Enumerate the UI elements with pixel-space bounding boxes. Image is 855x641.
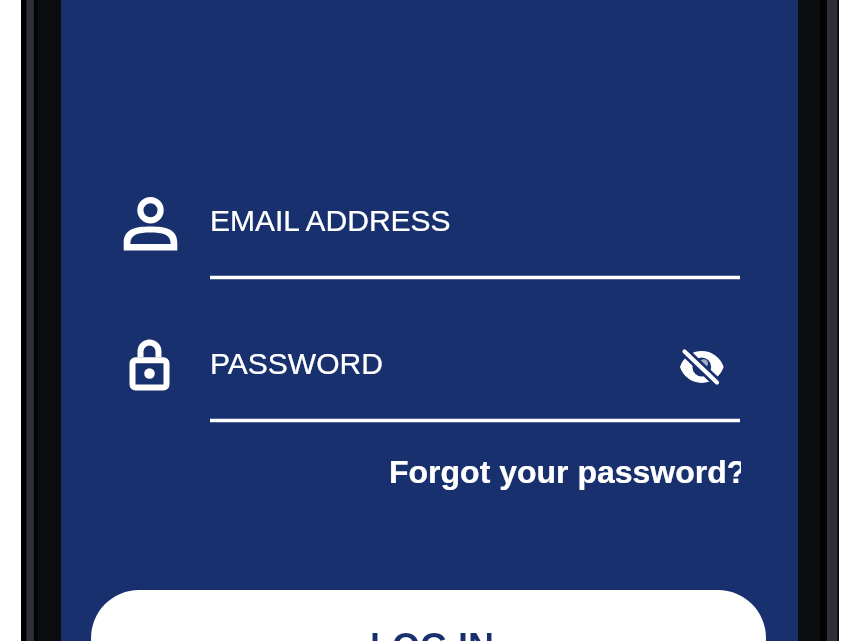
staticText: Forgot your password? <box>389 454 741 490</box>
button[interactable]: LOG IN <box>91 590 766 641</box>
button[interactable]: EMAIL ADDRESS <box>121 186 741 282</box>
button[interactable]: Forgot your password? <box>389 454 741 494</box>
button[interactable]: Show password <box>668 334 736 402</box>
button[interactable]: PASSWORD <box>121 329 661 425</box>
staticText: PASSWORD <box>210 347 383 381</box>
staticText: LOG IN <box>370 626 494 641</box>
staticText: EMAIL ADDRESS <box>210 204 451 238</box>
